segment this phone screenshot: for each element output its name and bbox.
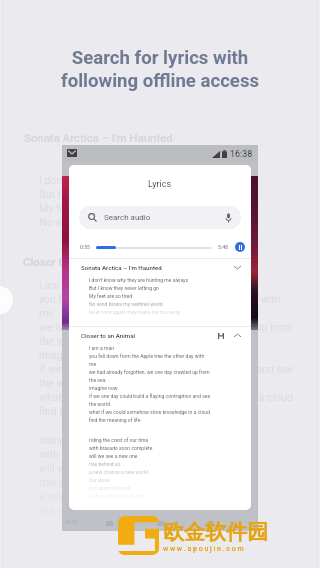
- button[interactable]: Closer to an Animal: [69, 327, 251, 344]
- staticText: Lyrics: [148, 179, 172, 190]
- staticText: with bravado soon complete: [39, 448, 173, 460]
- button[interactable]: Sonata Arctica – I'm Haunted: [69, 259, 251, 276]
- staticText: My feet are so tired: [39, 202, 130, 214]
- other: Save: [218, 333, 224, 339]
- staticText: find the meaning of life: [89, 417, 141, 423]
- staticText: I am a man: [39, 279, 92, 291]
- staticText: My feet are so tired: [89, 293, 133, 299]
- staticText: Now once again, they make me too away: [89, 309, 181, 315]
- button[interactable]: Search audio: [79, 206, 241, 229]
- staticText: we had already forgotten, we one day cra…: [89, 369, 210, 375]
- staticText: you fell down from the Apple tree the ot…: [39, 293, 281, 305]
- staticText: we had already forgotten, we one day cra…: [39, 321, 293, 333]
- staticText: Search audio: [104, 213, 151, 222]
- staticText: me: [39, 307, 54, 319]
- staticText: the world: [89, 401, 110, 407]
- staticText: 14:35: [65, 519, 78, 525]
- staticText: Our wave: [89, 477, 110, 483]
- staticText: riding the crest of our time: [89, 437, 149, 443]
- staticText: a new chance a new world: [89, 469, 148, 475]
- staticText: the sea: [89, 377, 106, 383]
- staticText: it is about to break: [89, 485, 131, 491]
- staticText: you fell down from the Apple tree the ot…: [89, 353, 205, 359]
- button[interactable]: Pause: [235, 242, 245, 252]
- staticText: will we see a new one: [89, 453, 138, 459]
- staticText: w w w . a p o u j i n . c o m: [163, 545, 244, 553]
- staticText: But I know they never letting go: [39, 188, 186, 200]
- staticText: 16:38: [230, 149, 253, 160]
- staticText: 0:55: [80, 244, 91, 250]
- staticText: Closer to an Animal: [23, 255, 123, 268]
- staticText: me: [89, 361, 97, 367]
- staticText: if we one day could build a flaying cont…: [89, 393, 211, 399]
- staticText: Search for lyrics with following offline…: [61, 47, 259, 92]
- staticText: riding the crest of our time: [39, 434, 164, 446]
- staticText: rise behind us: [89, 461, 121, 467]
- staticText: No wind blows my sentinel world: [89, 301, 163, 307]
- staticText: find the meaning of life: [39, 405, 148, 417]
- staticText: Sonata Arctica – I'm Haunted: [24, 131, 173, 144]
- staticText: Closer to an Animal: [81, 332, 136, 339]
- staticText: a new chance a new world: [39, 490, 163, 502]
- staticText: Our wave: [39, 504, 83, 516]
- other: Voice search: [225, 213, 232, 223]
- staticText: I don't know why they are hunting me alw…: [89, 277, 189, 283]
- staticText: and we will return to dust: [89, 493, 146, 499]
- staticText: 5:48: [218, 244, 229, 250]
- staticText: I don't know why they are hunting me alw…: [39, 174, 248, 186]
- staticText: if we one day could build a flaying cont…: [39, 363, 294, 375]
- staticText: the world: [39, 377, 83, 389]
- staticText: Sonata Arctica – I'm Haunted: [81, 264, 162, 271]
- staticText: No wind blows my sentinel world: [39, 216, 194, 228]
- staticText: rise behind us: [39, 476, 105, 488]
- staticText: imagine now: [39, 349, 100, 361]
- staticText: will we see a new one: [39, 462, 141, 474]
- staticText: what if we could somehow store knowledge…: [89, 409, 210, 415]
- staticText: what if we could somehow store knowledge…: [39, 391, 293, 403]
- staticText: 欧金软件园: [163, 519, 268, 545]
- staticText: But I know they never letting go: [89, 285, 159, 291]
- staticText: I am a man: [89, 345, 115, 351]
- staticText: the sea: [39, 335, 74, 347]
- staticText: with bravado soon complete: [89, 445, 153, 451]
- staticText: imagine now: [89, 385, 118, 391]
